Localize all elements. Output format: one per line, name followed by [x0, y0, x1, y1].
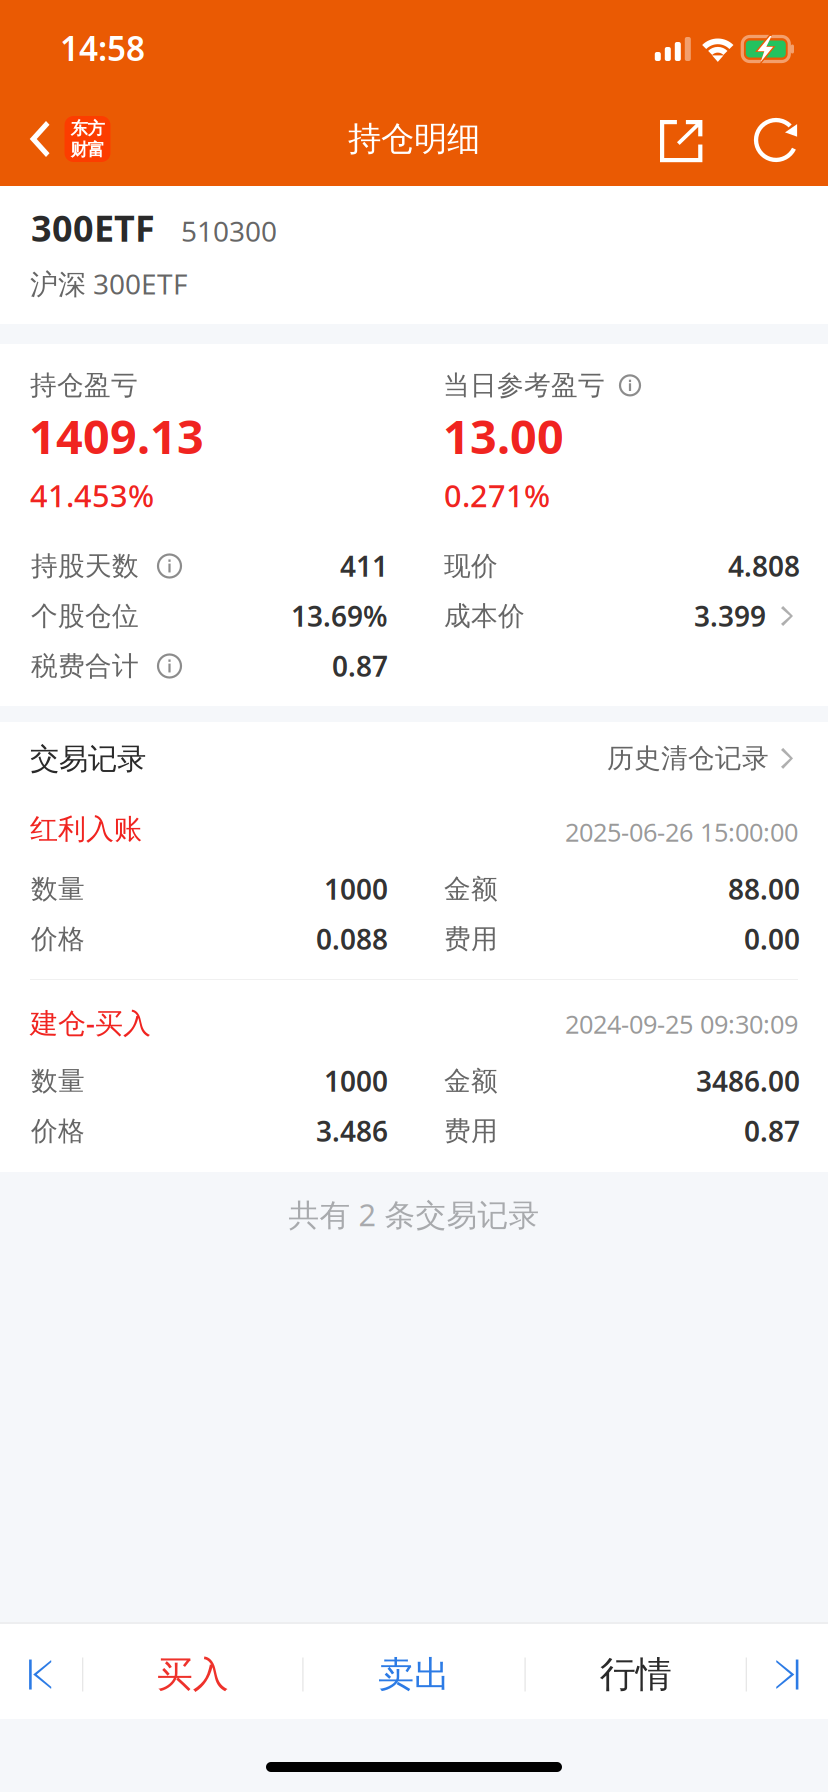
staticText: 个股仓位: [31, 600, 139, 632]
staticText: 510300: [181, 212, 277, 250]
button[interactable]: First record: [0, 1627, 82, 1722]
staticText: 现价: [444, 550, 498, 582]
staticText: 300ETF: [31, 204, 155, 252]
staticText: 买入: [157, 1652, 229, 1697]
staticText: 交易记录: [30, 741, 146, 777]
staticText: 金额: [444, 873, 498, 905]
staticText: 0.088: [316, 920, 388, 958]
staticText: 1000: [324, 870, 388, 908]
staticText: 13.00: [443, 405, 564, 467]
staticText: 金额: [444, 1065, 498, 1097]
staticText: 卖出: [378, 1652, 450, 1697]
staticText: 历史清仓记录: [607, 742, 769, 775]
staticText: 持股天数: [31, 550, 139, 582]
staticText: 费用: [444, 923, 498, 955]
staticText: 3.486: [316, 1112, 388, 1150]
staticText: 1409.13: [29, 405, 204, 467]
staticText: 0.87: [744, 1112, 800, 1150]
staticText: 行情: [600, 1652, 672, 1697]
staticText: 共有 2 条交易记录: [288, 1194, 539, 1235]
staticText: 0.87: [332, 647, 388, 685]
staticText: 411: [340, 547, 388, 585]
staticText: 数量: [31, 1065, 85, 1097]
staticText: 沪深 300ETF: [30, 265, 188, 302]
button[interactable]: Back: [12, 92, 124, 186]
staticText: 13.69%: [291, 597, 388, 635]
staticText: 持仓盈亏: [30, 369, 138, 402]
staticText: 88.00: [728, 870, 800, 908]
staticText: 41.453%: [30, 475, 154, 516]
staticText: 红利入账: [30, 812, 142, 846]
button[interactable]: Refresh: [739, 93, 813, 187]
staticText: 建仓-买入: [30, 1004, 151, 1041]
staticText: 0.271%: [444, 475, 550, 516]
staticText: 14:58: [60, 26, 145, 70]
button[interactable]: Share: [648, 96, 718, 190]
button[interactable]: 卖出: [303, 1627, 524, 1722]
staticText: 税费合计: [31, 650, 139, 682]
button[interactable]: 买入: [83, 1627, 302, 1722]
staticText: 费用: [444, 1115, 498, 1147]
staticText: 1000: [324, 1062, 388, 1100]
staticText: 成本价: [444, 600, 525, 632]
button[interactable]: 成本价 3.399: [442, 591, 798, 641]
staticText: 3486.00: [696, 1062, 800, 1100]
button[interactable]: 行情: [526, 1627, 746, 1722]
staticText: 4.808: [728, 547, 800, 585]
staticText: 价格: [31, 1115, 85, 1147]
staticText: 数量: [31, 873, 85, 905]
button[interactable]: Last record: [747, 1627, 828, 1722]
staticText: 价格: [31, 923, 85, 955]
staticText: 当日参考盈亏: [443, 369, 605, 402]
staticText: 0.00: [744, 920, 800, 958]
button[interactable]: 历史清仓记录: [601, 730, 799, 787]
staticText: 东方: [70, 118, 104, 139]
staticText: 财富: [70, 139, 104, 160]
staticText: 2024-09-25 09:30:09: [565, 1007, 798, 1041]
staticText: 持仓明细: [348, 118, 480, 159]
staticText: 2025-06-26 15:00:00: [565, 815, 798, 849]
staticText: 3.399: [694, 597, 766, 635]
